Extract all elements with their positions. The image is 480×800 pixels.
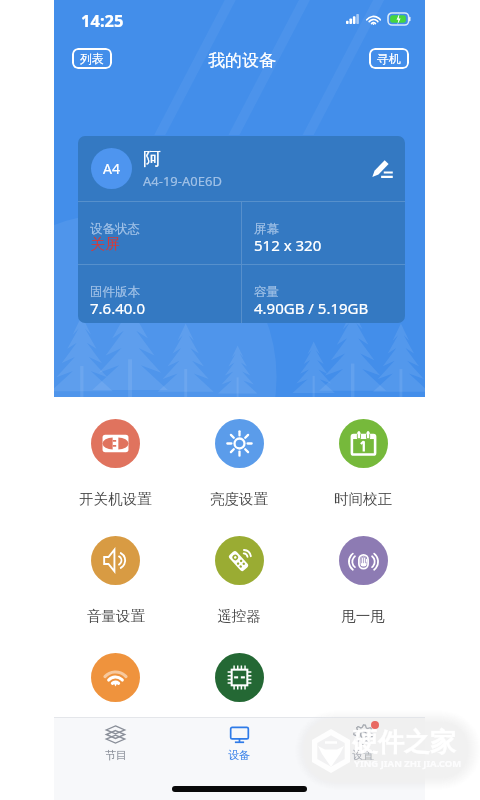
button[interactable]: 节目	[54, 718, 177, 768]
button[interactable]: 遥控器	[177, 514, 301, 631]
staticText: 硬件之家	[352, 726, 456, 759]
button[interactable]: Edit device name	[371, 158, 393, 180]
staticText: 设置	[352, 748, 374, 762]
button[interactable]: 列表	[72, 48, 112, 69]
staticText: A4-19-A0E6D	[143, 172, 222, 190]
button[interactable]: 设备	[177, 718, 301, 768]
staticText: 甩一甩	[341, 607, 385, 625]
button[interactable]: 亮度设置	[177, 397, 301, 514]
staticText: 关屏	[90, 235, 120, 254]
staticText: 设备	[228, 748, 250, 762]
staticText: 阿	[143, 148, 161, 171]
staticText: 我的设备	[208, 50, 276, 71]
staticText: 14:25	[81, 9, 124, 31]
staticText: 容量	[254, 284, 279, 300]
button[interactable]: 时间校正	[301, 397, 425, 514]
button[interactable]: 甩一甩	[301, 514, 425, 631]
staticText: 屏幕	[254, 221, 279, 237]
button[interactable]: 开关机设置	[54, 397, 177, 514]
staticText: 硬件信息	[210, 724, 268, 742]
staticText: 设备状态	[90, 221, 140, 237]
button[interactable]: 设置	[301, 718, 425, 768]
staticText: 列表	[80, 51, 104, 66]
staticText: 音量设置	[87, 607, 145, 625]
staticText: 时间校正	[334, 490, 392, 508]
staticText: 节目	[105, 748, 127, 762]
staticText: 亮度设置	[210, 490, 268, 508]
button[interactable]: 寻机	[369, 48, 409, 69]
button[interactable]: A4	[78, 136, 405, 323]
staticText: 固件版本	[90, 284, 140, 300]
staticText: 512 x 320	[254, 235, 322, 255]
button[interactable]: 音量设置	[54, 514, 177, 631]
staticText: 7.6.40.0	[90, 298, 145, 318]
staticText: 寻机	[377, 51, 401, 66]
staticText: YING JIAN ZHI JIA.COM	[354, 757, 462, 770]
staticText: 遥控器	[217, 607, 261, 625]
button[interactable]: WiFi设置	[54, 631, 177, 748]
staticText: 开关机设置	[79, 490, 152, 508]
staticText: A4	[103, 159, 120, 178]
staticText: 4.90GB / 5.19GB	[254, 298, 369, 318]
button[interactable]: 硬件信息	[177, 631, 301, 748]
staticText: WiFi设置	[87, 724, 145, 744]
